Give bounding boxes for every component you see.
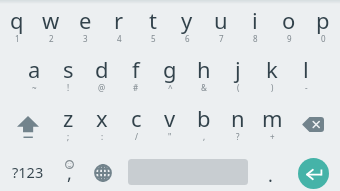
staticText: b xyxy=(197,103,211,133)
staticText: 0 xyxy=(321,33,326,44)
button[interactable]: u xyxy=(204,0,238,49)
staticText: g xyxy=(163,54,177,84)
staticText: # xyxy=(133,82,139,93)
staticText: / xyxy=(135,131,138,142)
button[interactable]: s xyxy=(51,49,85,98)
button[interactable]: n xyxy=(221,98,255,147)
staticText: - xyxy=(305,82,308,93)
button[interactable]: i xyxy=(238,0,272,49)
staticText: r xyxy=(114,5,124,35)
button[interactable]: r xyxy=(102,0,136,49)
staticText: 5 xyxy=(151,33,156,44)
staticText: f xyxy=(132,54,140,84)
button[interactable]: o xyxy=(272,0,306,49)
staticText: ( xyxy=(237,82,240,93)
staticText: ~ xyxy=(32,82,37,93)
staticText: o xyxy=(282,5,296,35)
button[interactable]: Change language xyxy=(86,148,120,191)
staticText: 7 xyxy=(219,33,224,44)
staticText: x xyxy=(96,103,108,133)
staticText: 2 xyxy=(49,33,54,44)
staticText: y xyxy=(181,5,193,35)
button[interactable]: e xyxy=(68,0,102,49)
button[interactable]: f xyxy=(119,49,153,98)
staticText: ! xyxy=(67,82,70,93)
button[interactable]: y xyxy=(170,0,204,49)
button[interactable]: p xyxy=(306,0,340,49)
staticText: " xyxy=(168,131,172,142)
staticText: m xyxy=(262,103,283,133)
button[interactable]: Shift xyxy=(2,98,53,147)
staticText: c xyxy=(131,103,142,133)
staticText: 1 xyxy=(15,33,20,44)
button[interactable]: c xyxy=(119,98,153,147)
staticText: d xyxy=(95,54,109,84)
button[interactable]: Enter xyxy=(298,158,329,189)
button[interactable]: g xyxy=(153,49,187,98)
staticText: p xyxy=(316,5,330,35)
staticText: t xyxy=(149,5,157,35)
button[interactable]: Delete xyxy=(287,98,338,147)
staticText: & xyxy=(201,82,207,93)
staticText: 8 xyxy=(253,33,258,44)
button[interactable] xyxy=(120,148,254,191)
staticText: ?123 xyxy=(12,162,44,182)
button[interactable]: x xyxy=(85,98,119,147)
staticText: @ xyxy=(98,82,106,93)
staticText: a xyxy=(28,54,41,84)
staticText: j xyxy=(235,54,241,84)
staticText: n xyxy=(231,103,245,133)
staticText: ? xyxy=(236,131,240,142)
staticText: k xyxy=(266,54,278,84)
staticText: , xyxy=(203,131,206,142)
staticText: 9 xyxy=(287,33,292,44)
staticText: ; xyxy=(67,131,70,142)
button[interactable]: w xyxy=(34,0,68,49)
staticText: i xyxy=(252,5,258,35)
button[interactable]: a xyxy=(17,49,51,98)
button[interactable]: ?123 xyxy=(2,148,53,191)
button[interactable]: t xyxy=(136,0,170,49)
button[interactable]: h xyxy=(187,49,221,98)
staticText: ^ xyxy=(168,82,173,93)
staticText: s xyxy=(63,54,74,84)
button[interactable]: d xyxy=(85,49,119,98)
staticText: , xyxy=(67,161,72,186)
staticText: 3 xyxy=(83,33,88,44)
button[interactable]: l xyxy=(289,49,323,98)
staticText: ) xyxy=(271,82,274,93)
staticText: z xyxy=(63,103,74,133)
staticText: u xyxy=(214,5,228,35)
button[interactable]: j xyxy=(221,49,255,98)
staticText: w xyxy=(42,5,60,35)
staticText: v xyxy=(164,103,176,133)
button[interactable]: k xyxy=(255,49,289,98)
staticText: + xyxy=(270,131,275,142)
staticText: h xyxy=(197,54,211,84)
staticText: : xyxy=(101,131,104,142)
button[interactable]: v xyxy=(153,98,187,147)
button[interactable]: m xyxy=(255,98,289,147)
staticText: . xyxy=(268,163,273,188)
button[interactable]: b xyxy=(187,98,221,147)
staticText: q xyxy=(10,5,24,35)
button[interactable]: , xyxy=(53,148,85,191)
button[interactable]: q xyxy=(0,0,34,49)
staticText: l xyxy=(303,54,309,84)
staticText: 6 xyxy=(185,33,190,44)
staticText: 4 xyxy=(117,33,122,44)
button[interactable]: z xyxy=(51,98,85,147)
staticText: e xyxy=(79,5,92,35)
button[interactable]: . xyxy=(254,148,287,191)
